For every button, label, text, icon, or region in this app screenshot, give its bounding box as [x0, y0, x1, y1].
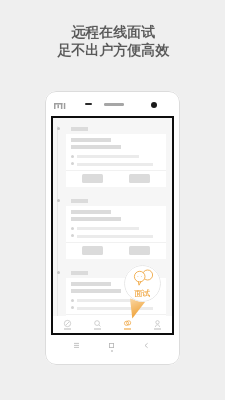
- button[interactable]: 我的: [142, 320, 172, 330]
- button[interactable]: [66, 278, 166, 331]
- button[interactable]: 面试: [124, 265, 161, 302]
- button[interactable]: [129, 318, 150, 327]
- button[interactable]: [66, 206, 166, 259]
- staticText: 面试: [134, 288, 150, 298]
- staticText: 足不出户方便高效: [57, 42, 169, 60]
- button[interactable]: [66, 134, 166, 187]
- button[interactable]: 首页: [53, 320, 82, 330]
- staticText: 远程在线面试: [71, 24, 155, 42]
- button[interactable]: [82, 318, 103, 327]
- button[interactable]: 面试: [112, 320, 142, 330]
- button[interactable]: 职位: [82, 320, 112, 330]
